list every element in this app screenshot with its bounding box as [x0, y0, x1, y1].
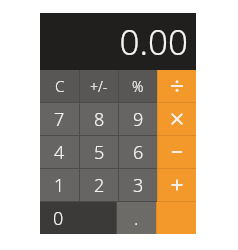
staticText: 1: [54, 173, 65, 198]
button[interactable]: 4: [40, 136, 79, 168]
staticText: 5: [94, 140, 105, 165]
button[interactable]: 1: [40, 169, 79, 201]
button[interactable]: 0: [40, 202, 116, 234]
staticText: 0: [53, 206, 64, 231]
staticText: +/-: [90, 77, 108, 96]
button[interactable]: Plus: [158, 169, 196, 201]
staticText: 9: [133, 107, 144, 132]
staticText: 0.00: [119, 18, 188, 66]
button[interactable]: 8: [80, 103, 118, 135]
button[interactable]: 3: [119, 169, 157, 201]
staticText: 8: [94, 107, 105, 132]
staticText: 4: [54, 140, 65, 165]
button[interactable]: 5: [80, 136, 118, 168]
staticText: .: [134, 206, 139, 231]
button[interactable]: %: [119, 70, 157, 102]
button[interactable]: 6: [119, 136, 157, 168]
button[interactable]: Multiply: [158, 103, 196, 135]
button[interactable]: +/-: [80, 70, 118, 102]
button[interactable]: C: [40, 70, 79, 102]
button[interactable]: 9: [119, 103, 157, 135]
staticText: %: [132, 77, 144, 96]
staticText: C: [55, 76, 65, 96]
button[interactable]: .: [117, 202, 156, 234]
button[interactable]: 2: [80, 169, 118, 201]
staticText: 3: [133, 173, 144, 198]
button[interactable]: Divide: [158, 70, 196, 102]
staticText: 6: [133, 140, 144, 165]
staticText: 2: [94, 173, 105, 198]
staticText: 7: [54, 107, 65, 132]
button[interactable]: 7: [40, 103, 79, 135]
button[interactable]: Minus: [158, 136, 196, 168]
